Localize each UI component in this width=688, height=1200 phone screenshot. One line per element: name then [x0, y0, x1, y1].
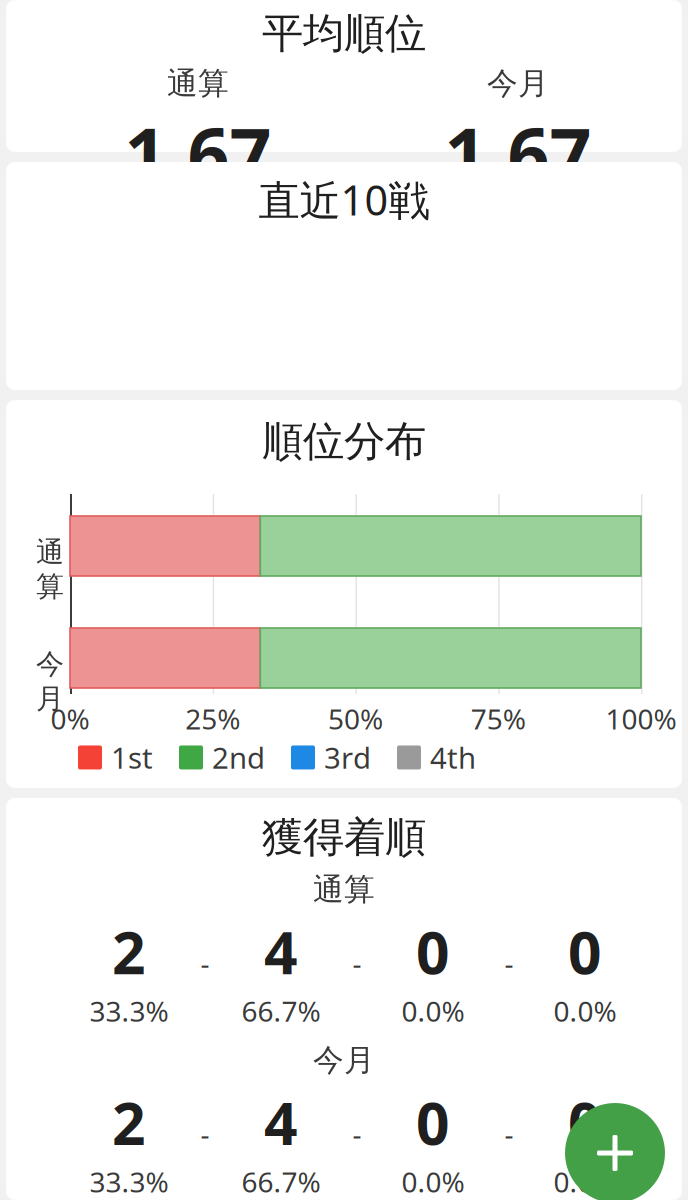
staticText: 2 — [112, 912, 146, 990]
staticText: 3rd — [324, 738, 371, 777]
staticText: 0.0% — [553, 992, 616, 1029]
button[interactable]: 記録を追加 — [565, 1103, 665, 1200]
staticText: 50% — [328, 700, 383, 737]
staticText: 獲得着順 — [262, 812, 426, 863]
staticText: - — [504, 944, 513, 982]
staticText: 今月 — [313, 1041, 375, 1079]
staticText: 4 — [264, 912, 298, 990]
staticText: 2nd — [212, 738, 265, 777]
staticText: - — [200, 944, 209, 982]
staticText: 順位分布 — [262, 416, 426, 467]
staticText: 平均順位 — [262, 8, 426, 59]
staticText: 直近10戦 — [258, 172, 429, 227]
staticText: 今月 — [36, 647, 64, 716]
staticText: 75% — [471, 700, 526, 737]
staticText: - — [200, 1115, 209, 1152]
staticText: 0% — [50, 700, 89, 737]
staticText: 1.67 — [124, 104, 271, 202]
staticText: 25% — [185, 700, 240, 737]
staticText: - — [504, 1115, 513, 1152]
staticText: 0.0% — [553, 1163, 616, 1200]
staticText: 33.3% — [89, 1163, 168, 1200]
staticText: 0 — [568, 1083, 602, 1161]
staticText: 通算 — [313, 871, 375, 908]
staticText: - — [352, 1115, 361, 1152]
staticText: - — [352, 944, 361, 982]
staticText: 33.3% — [89, 992, 168, 1029]
staticText: 100% — [605, 700, 676, 737]
staticText: 0 — [568, 912, 602, 990]
staticText: 0.0% — [401, 1163, 464, 1200]
staticText: 4 — [264, 1083, 298, 1161]
staticText: 通算 — [167, 65, 229, 102]
staticText: 2 — [112, 1083, 146, 1161]
staticText: 0 — [416, 1083, 450, 1161]
staticText: 0 — [416, 912, 450, 990]
staticText: 1.67 — [444, 104, 591, 202]
staticText: 0.0% — [401, 992, 464, 1029]
staticText: 66.7% — [241, 992, 320, 1029]
staticText: 通算 — [36, 535, 64, 604]
staticText: 1st — [111, 738, 153, 777]
staticText: 4th — [430, 738, 476, 777]
staticText: 今月 — [487, 65, 549, 102]
staticText: 66.7% — [241, 1163, 320, 1200]
